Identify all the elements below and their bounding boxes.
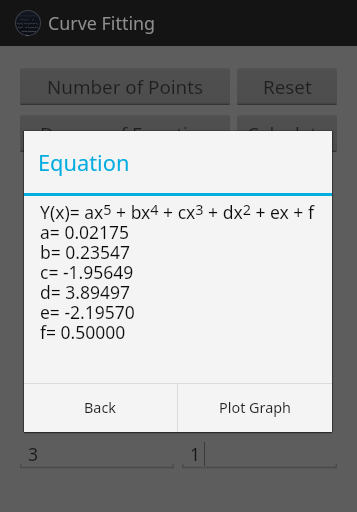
button[interactable]: 3 bbox=[20, 435, 174, 469]
staticText: Degree of Equation bbox=[40, 121, 211, 147]
staticText: Number of Points bbox=[47, 74, 204, 100]
button[interactable]: Number of Points bbox=[20, 68, 230, 105]
staticText: Plot Graph bbox=[219, 398, 292, 418]
button[interactable]: Degree of Equation bbox=[20, 115, 230, 152]
staticText: Reset bbox=[263, 74, 312, 100]
button[interactable]: Curve Fitting app icon bbox=[15, 10, 41, 36]
button[interactable]: Back bbox=[24, 384, 177, 432]
staticText: 3 bbox=[28, 442, 39, 466]
button[interactable]: Reset bbox=[237, 68, 337, 105]
staticText: Y(x)= ax5 + bx4 + cx3 + dx2 + ex + f a= … bbox=[40, 200, 314, 344]
button[interactable]: Plot Graph bbox=[178, 384, 332, 432]
staticText: Curve Fitting bbox=[48, 11, 156, 35]
staticText: Back bbox=[84, 398, 117, 418]
staticText: Equation bbox=[38, 148, 130, 178]
staticText: Calculate bbox=[247, 121, 328, 147]
button[interactable]: 1 bbox=[182, 435, 337, 469]
staticText: 1 bbox=[190, 442, 201, 466]
button[interactable]: Calculate bbox=[237, 115, 337, 152]
